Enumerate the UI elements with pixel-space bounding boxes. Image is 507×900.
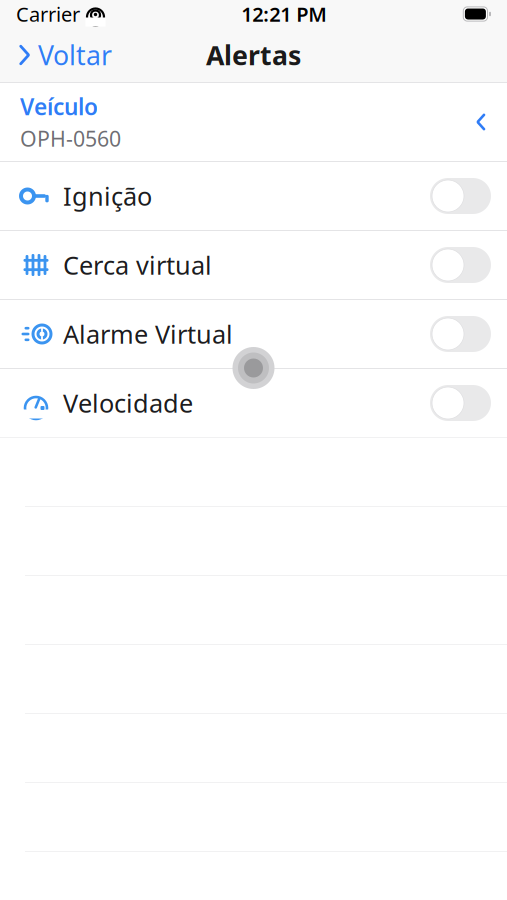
staticText: Alarme Virtual [63, 317, 233, 351]
button[interactable]: Velocidade [0, 369, 507, 437]
staticText: Cerca virtual [63, 248, 212, 282]
button[interactable]: Ignição [0, 162, 507, 230]
staticText: Veículo [20, 91, 98, 121]
button[interactable]: Voltar [0, 29, 112, 81]
staticText: Carrier [16, 1, 80, 27]
button[interactable]: Cerca virtual [0, 231, 507, 299]
button[interactable]: Alarme Virtual [0, 300, 507, 368]
staticText: OPH-0560 [20, 124, 121, 153]
staticText: Velocidade [63, 386, 193, 420]
button[interactable]: Veículo [0, 83, 507, 161]
staticText: 12:21 PM [241, 1, 327, 27]
staticText: Voltar [38, 37, 112, 73]
staticText: Ignição [63, 179, 152, 213]
staticText: Alertas [206, 37, 301, 73]
